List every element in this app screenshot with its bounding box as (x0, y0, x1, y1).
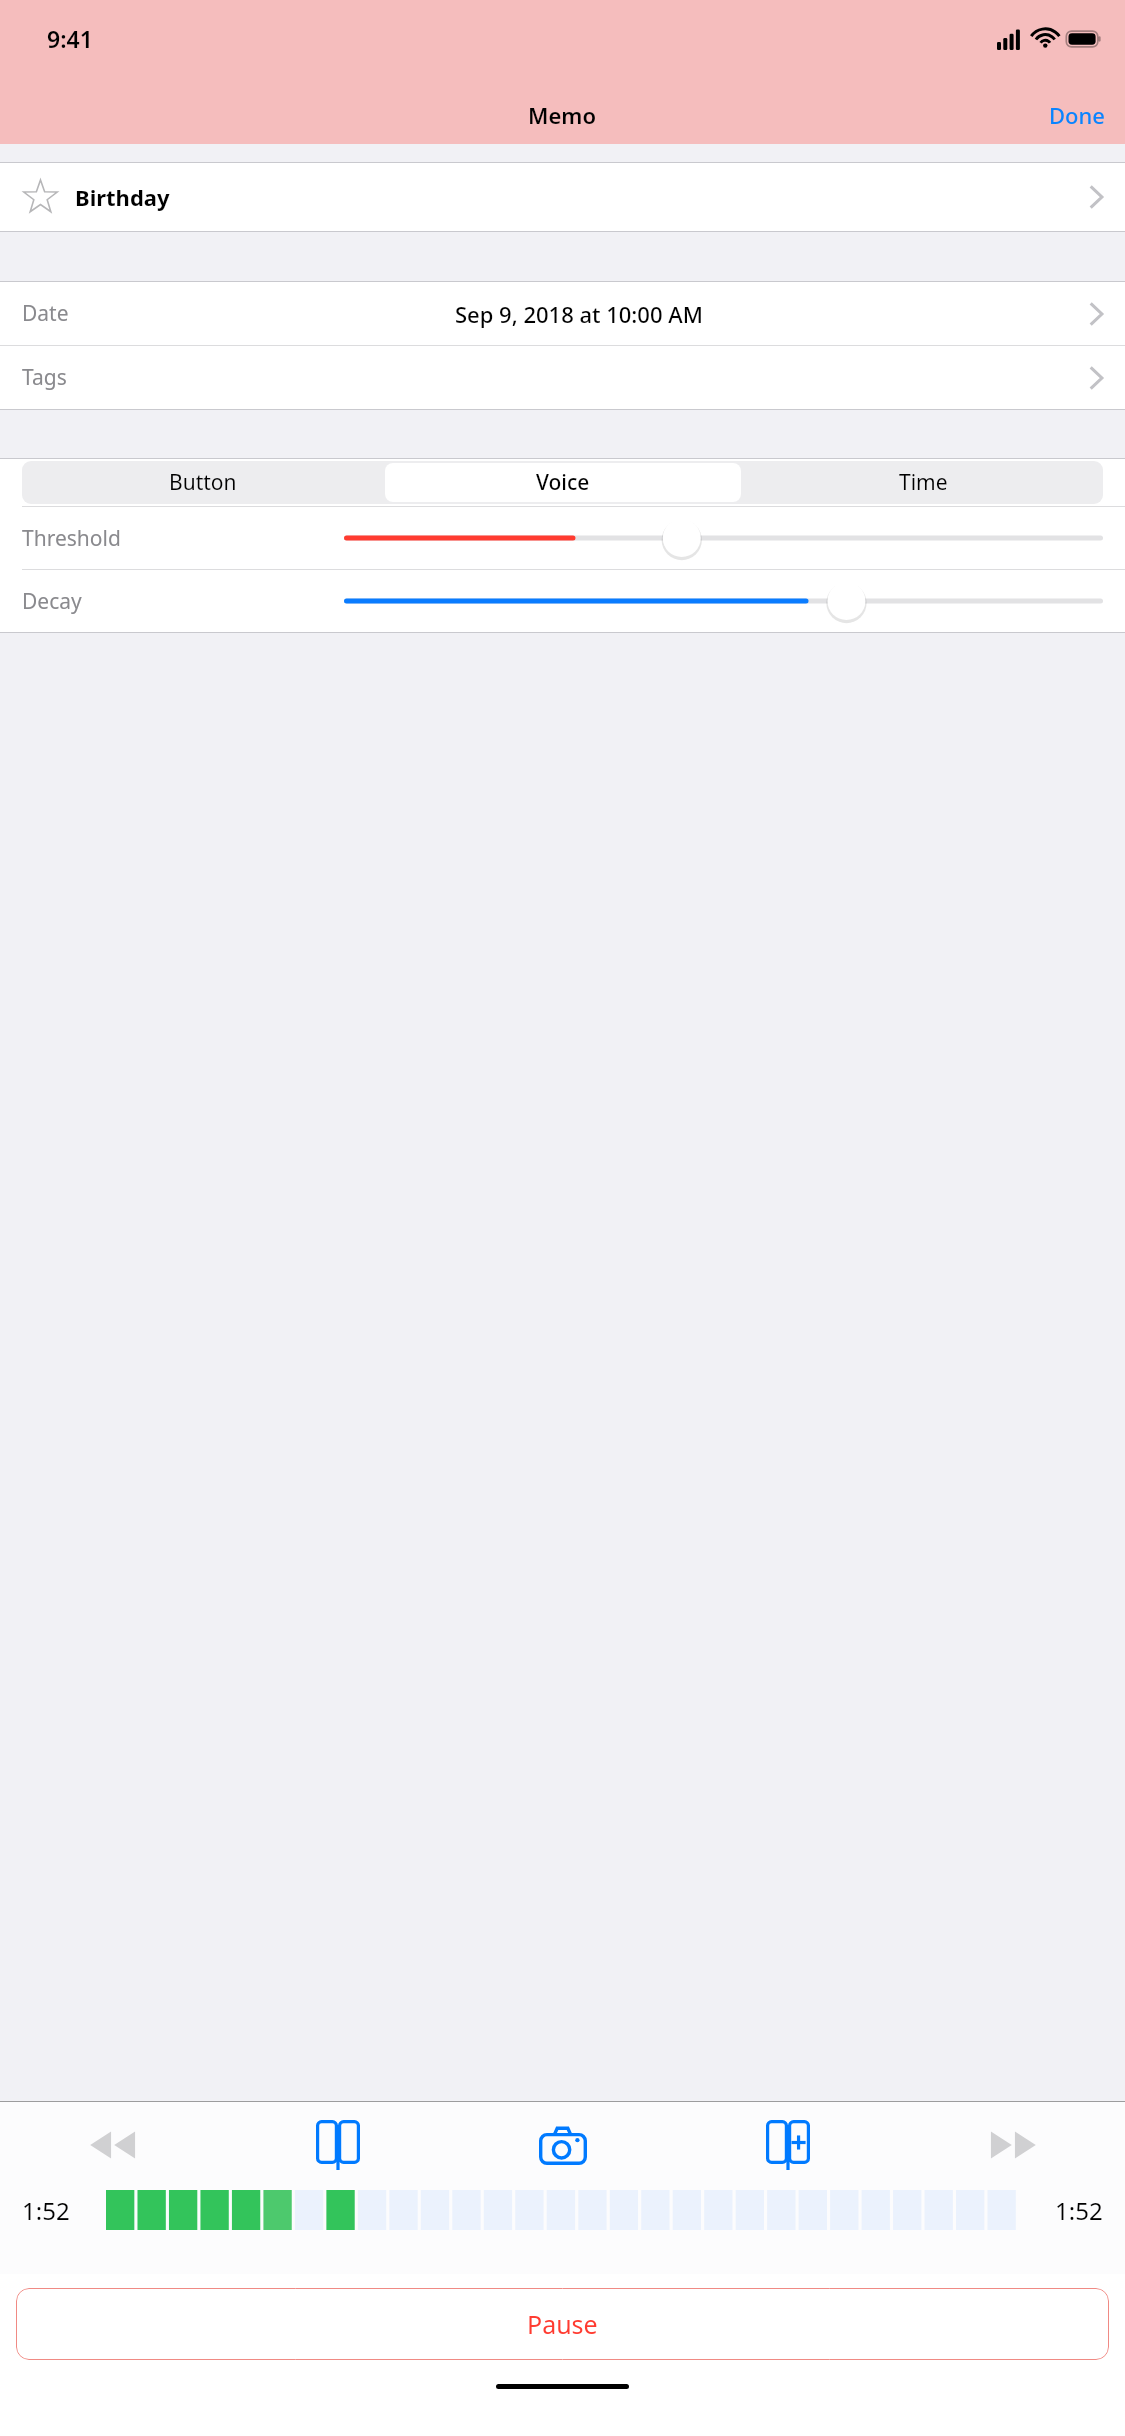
button[interactable]: Time (745, 463, 1101, 502)
staticText: Voice (536, 468, 590, 497)
button[interactable]: Date (0, 282, 1125, 345)
staticText: 1:52 (1055, 2194, 1103, 2227)
button[interactable]: Forward (900, 2118, 1125, 2172)
staticText: Pause (527, 2307, 598, 2341)
staticText: 1:52 (22, 2194, 70, 2227)
button[interactable]: Button (24, 463, 381, 502)
staticText: Time (899, 468, 948, 497)
button[interactable]: Threshold (344, 510, 1103, 566)
staticText: Memo (528, 100, 597, 130)
staticText: Tags (22, 363, 67, 392)
button[interactable]: Bookmarks (225, 2118, 450, 2172)
button[interactable]: Voice (385, 463, 741, 502)
button[interactable]: Decay (344, 573, 1103, 629)
staticText: 9:41 (47, 23, 93, 54)
staticText: Date (22, 299, 69, 328)
button[interactable]: Tags (0, 346, 1125, 409)
button[interactable]: Pause (16, 2288, 1109, 2360)
button[interactable]: Birthday (0, 163, 1125, 231)
staticText: Sep 9, 2018 at 10:00 AM (455, 299, 703, 329)
button[interactable]: Done (1029, 92, 1125, 138)
staticText: Decay (22, 587, 82, 616)
button[interactable]: Rewind (0, 2118, 225, 2172)
button[interactable]: Camera (450, 2118, 675, 2172)
button[interactable]: Add bookmark (675, 2118, 900, 2172)
staticText: Button (169, 468, 237, 497)
staticText: Birthday (75, 182, 170, 212)
staticText: Done (1049, 100, 1105, 130)
staticText: Threshold (22, 524, 121, 553)
